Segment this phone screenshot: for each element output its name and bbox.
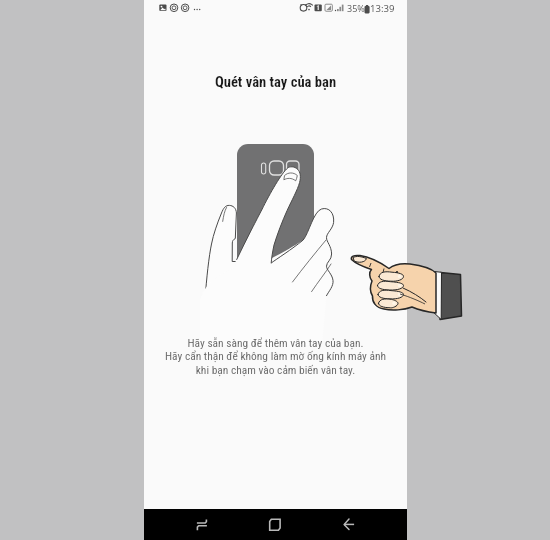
staticText: Quét vân tay của bạn xyxy=(144,73,407,90)
button[interactable]: Recents xyxy=(178,509,226,540)
button[interactable]: Back xyxy=(325,509,373,540)
staticText: Hãy sẵn sàng để thêm vân tay của bạn. Hã… xyxy=(144,336,407,377)
staticText: 35% xyxy=(347,2,365,14)
button[interactable]: Home xyxy=(251,509,299,540)
staticText: 13:39 xyxy=(370,2,395,15)
